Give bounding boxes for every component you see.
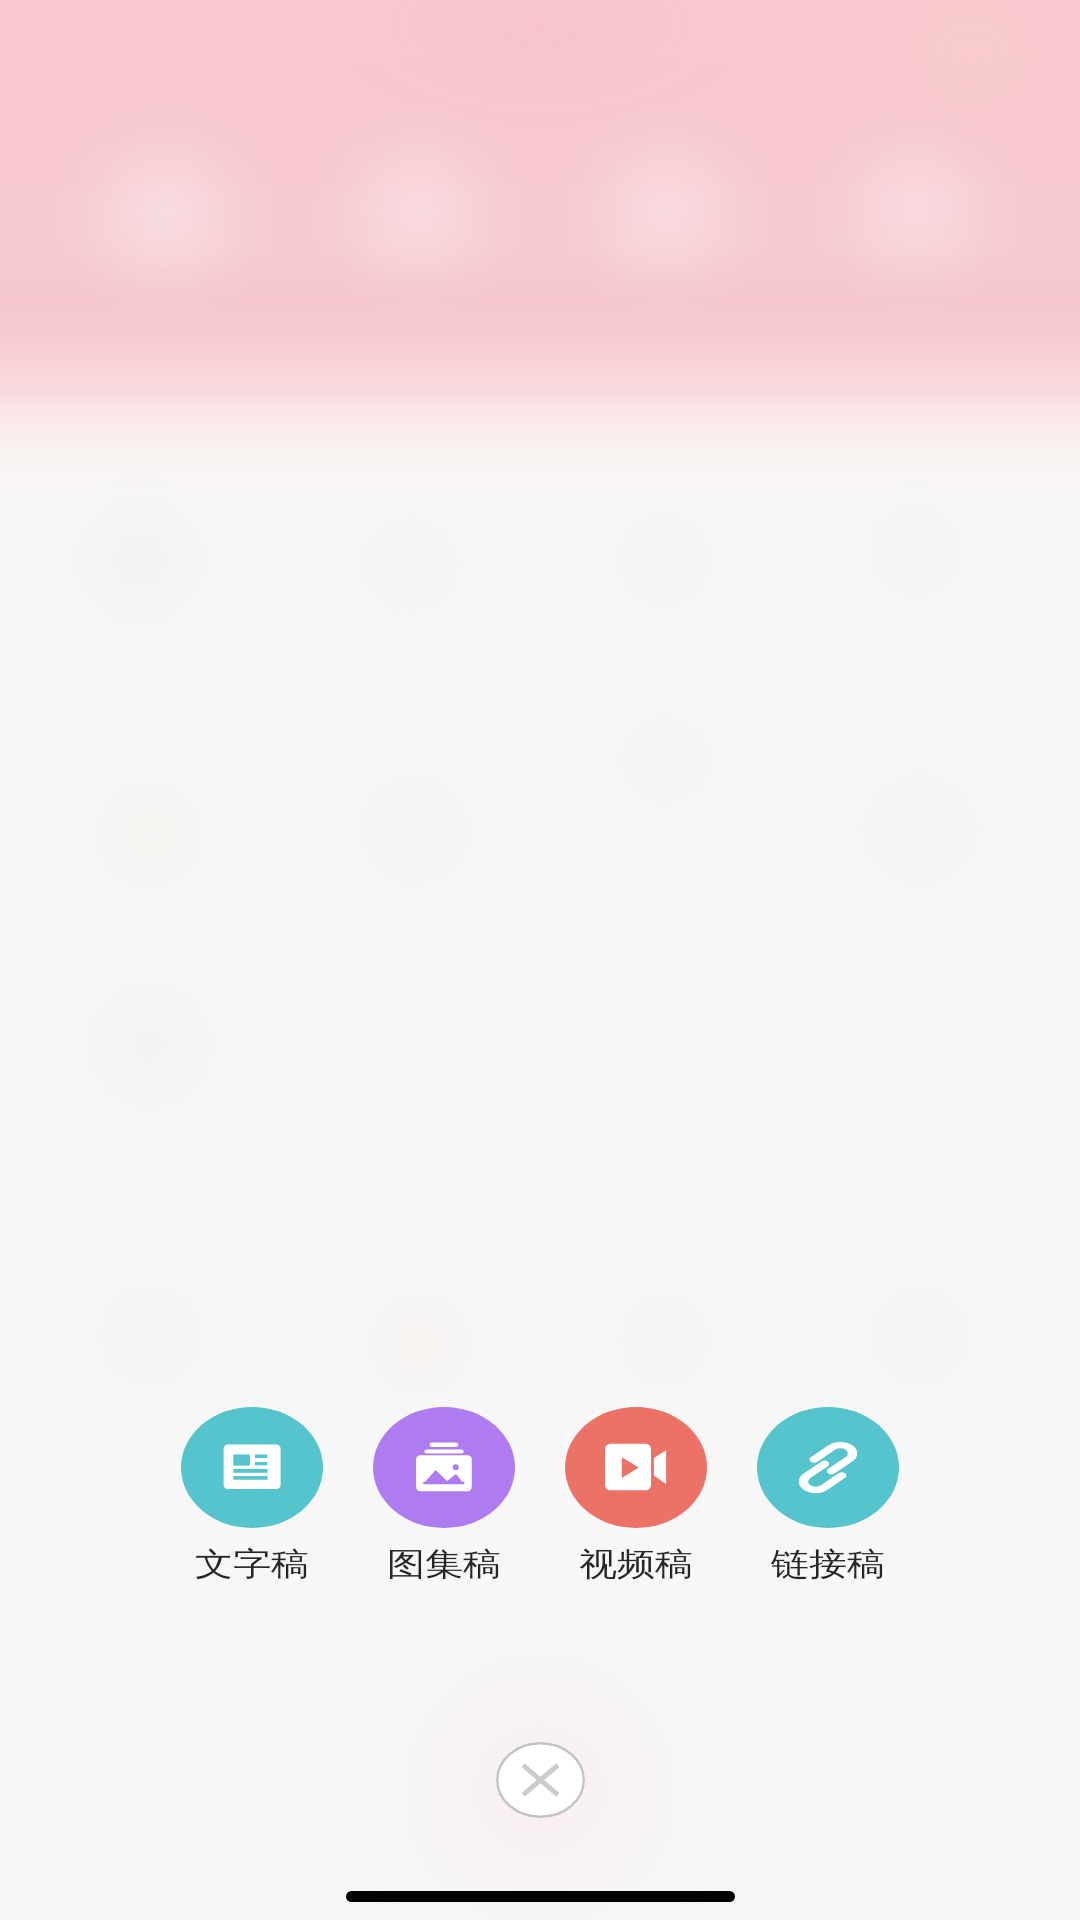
staticText: 图集稿 xyxy=(387,1544,501,1584)
button[interactable]: 视频稿 xyxy=(540,1407,732,1584)
button[interactable]: Close xyxy=(496,1742,585,1818)
button[interactable]: 链接稿 xyxy=(732,1407,924,1584)
button[interactable]: 图集稿 xyxy=(348,1407,540,1584)
button[interactable]: 文字稿 xyxy=(156,1407,348,1584)
staticText: 视频稿 xyxy=(579,1544,693,1584)
staticText: 文字稿 xyxy=(195,1544,309,1584)
staticText: 链接稿 xyxy=(771,1544,885,1584)
